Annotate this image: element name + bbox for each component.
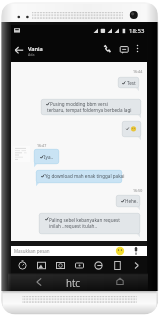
staticText: 16:44 xyxy=(133,69,143,74)
staticText: htc xyxy=(66,276,81,290)
staticText: 16:50 xyxy=(133,188,143,193)
button[interactable]: More xyxy=(131,260,142,271)
button[interactable]: Iya.. xyxy=(34,149,59,164)
button[interactable]: Chat xyxy=(119,44,130,55)
button[interactable]: Home xyxy=(114,276,126,288)
button[interactable]: Recent xyxy=(17,260,28,271)
button[interactable]: Shared image xyxy=(13,146,30,162)
staticText: Yg download mah enak tinggal pakai xyxy=(45,173,125,179)
staticText: 18:53 xyxy=(129,27,145,35)
button[interactable]: Search xyxy=(93,260,104,271)
button[interactable]: Test xyxy=(118,77,139,88)
staticText: Hehe. xyxy=(125,198,138,204)
staticText: Paling sebel kebanyakan request xyxy=(49,217,120,223)
button[interactable]: Back xyxy=(33,276,45,288)
button[interactable]: Pusing modding bbm versi xyxy=(41,99,141,115)
button[interactable]: Call xyxy=(102,44,113,55)
button[interactable]: Back xyxy=(14,45,25,56)
button[interactable]: Yg download mah enak tinggal pakai xyxy=(36,170,122,183)
button[interactable] xyxy=(122,121,141,137)
staticText: terbaru, tempat foldernya berbeda lagi xyxy=(47,107,132,113)
button[interactable]: Camera xyxy=(55,260,66,271)
button[interactable]: Voice input xyxy=(131,246,141,256)
staticText: Pusing modding bbm versi xyxy=(50,101,108,107)
button[interactable]: Gif xyxy=(74,260,85,271)
button[interactable]: Paling sebel kebanyakan request xyxy=(39,213,140,234)
button[interactable]: Emoji xyxy=(115,246,125,256)
staticText: Ada xyxy=(28,52,35,57)
button[interactable]: More options xyxy=(133,44,142,53)
staticText: Iya.. xyxy=(44,154,53,160)
button[interactable]: Image xyxy=(36,260,47,271)
staticText: inilah ..request itulah.. xyxy=(49,223,97,229)
staticText: 16:47 xyxy=(37,143,47,148)
staticText: Vania xyxy=(28,45,43,53)
button[interactable]: Hehe. xyxy=(116,195,140,207)
staticText: Masukkan pesan xyxy=(14,248,50,254)
button[interactable]: Clipboard xyxy=(112,260,123,271)
staticText: Test xyxy=(127,80,136,86)
